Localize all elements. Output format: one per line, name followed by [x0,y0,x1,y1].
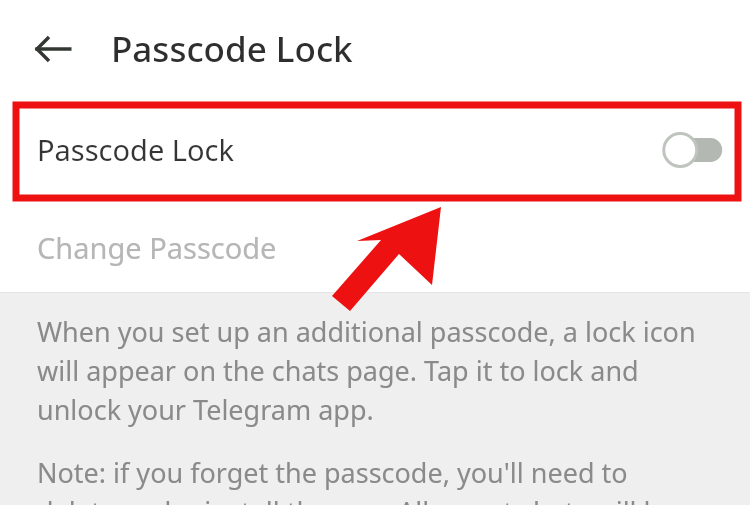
staticText: When you set up an additional passcode, … [37,313,706,428]
button[interactable]: Passcode Lock [0,97,750,202]
staticText: Change Passcode [37,228,277,267]
staticText: Passcode Lock [37,130,655,169]
button[interactable]: Back [26,22,80,76]
staticText: Note: if you forget the passcode, you'll… [37,454,706,505]
button[interactable]: Passcode Lock toggle [655,121,729,179]
staticText: Passcode Lock [111,25,353,73]
button[interactable]: Change Passcode [0,202,750,292]
